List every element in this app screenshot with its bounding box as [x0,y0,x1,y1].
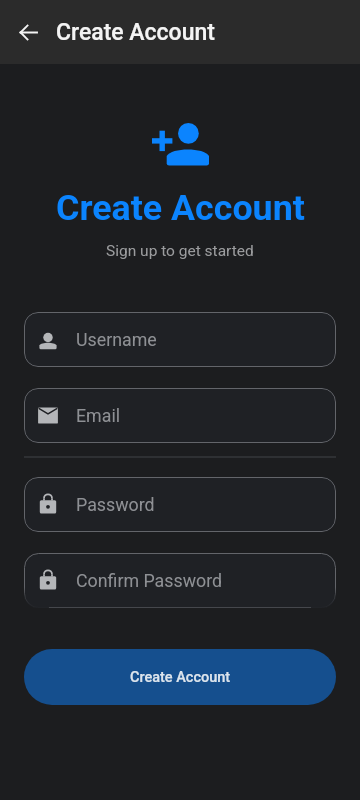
button[interactable]: Password [24,477,336,532]
staticText: Sign up to get started [106,242,254,260]
staticText: Username [76,329,157,350]
button[interactable]: Back [8,12,48,52]
button[interactable]: Confirm Password [24,553,336,608]
staticText: Email [76,405,121,426]
staticText: Confirm Password [76,570,223,591]
button[interactable]: Create Account [24,649,336,705]
button[interactable]: Email [24,388,336,443]
staticText: Create Account [56,19,215,46]
staticText: Create Account [130,669,231,686]
staticText: Create Account [56,187,305,229]
staticText: Password [76,494,155,515]
button[interactable]: Username [24,312,336,367]
